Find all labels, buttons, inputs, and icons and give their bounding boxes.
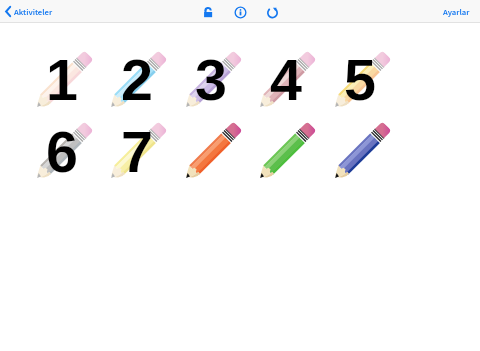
button[interactable]: 7 (110, 125, 164, 179)
button[interactable]: Aktiviteler (0, 0, 57, 23)
staticText: Ayarlar (443, 6, 470, 18)
button[interactable]: 2 (110, 54, 164, 108)
staticText: 2 (121, 48, 153, 112)
staticText: Aktiviteler (14, 6, 53, 18)
button[interactable]: Pencil 9 (259, 125, 313, 179)
staticText: 3 (195, 48, 227, 112)
button[interactable]: Pencil 10 (334, 125, 388, 179)
button[interactable]: 4 (259, 54, 313, 108)
button[interactable]: 3 (185, 54, 239, 108)
staticText: 6 (46, 120, 78, 184)
button[interactable]: 5 (334, 54, 388, 108)
button[interactable]: Refresh (261, 1, 283, 23)
staticText: 4 (270, 48, 302, 112)
button[interactable]: 6 (36, 125, 90, 179)
button[interactable]: 1 (36, 54, 90, 108)
staticText: 5 (344, 48, 376, 112)
button[interactable]: Pencil 8 (185, 125, 239, 179)
button[interactable]: Ayarlar (433, 0, 480, 23)
staticText: 7 (121, 120, 153, 184)
staticText: 1 (46, 48, 78, 112)
button[interactable]: Information (229, 1, 251, 23)
button[interactable]: Lock (197, 1, 219, 23)
